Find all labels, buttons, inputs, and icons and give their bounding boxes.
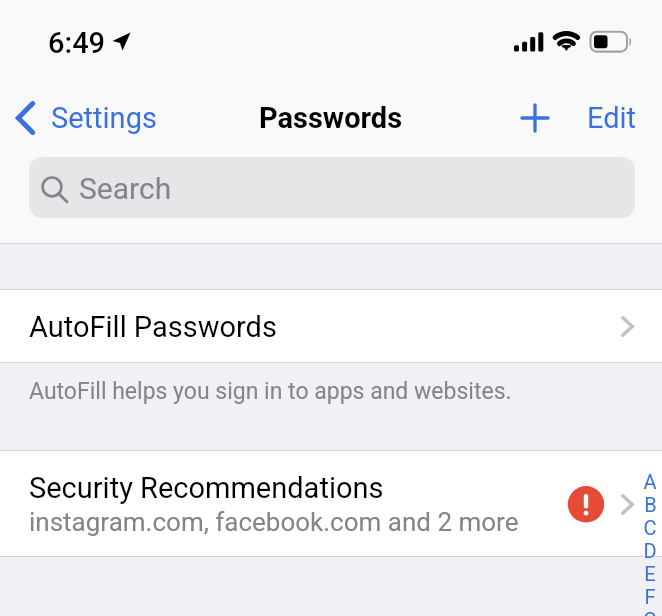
staticText: A <box>643 470 657 493</box>
button[interactable]: A <box>637 470 662 493</box>
button[interactable]: Add password <box>514 97 556 139</box>
staticText: E <box>644 562 656 585</box>
button[interactable]: D <box>637 539 662 562</box>
button[interactable]: E <box>637 562 662 585</box>
button[interactable]: Search <box>29 157 635 218</box>
button[interactable]: G <box>637 608 662 616</box>
button[interactable]: F <box>637 585 662 608</box>
staticText: G <box>643 608 657 616</box>
staticText: Edit <box>587 101 637 135</box>
staticText: Search <box>79 171 172 206</box>
staticText: AutoFill Passwords <box>29 310 277 344</box>
staticText: Passwords <box>259 101 403 135</box>
button[interactable]: Security Recommendations <box>0 451 662 557</box>
staticText: C <box>643 516 657 539</box>
staticText: 6:49 <box>48 26 106 60</box>
staticText: F <box>644 585 656 608</box>
button[interactable]: Edit <box>582 92 642 144</box>
button[interactable]: AutoFill Passwords <box>0 290 662 363</box>
staticText: D <box>643 539 657 562</box>
staticText: B <box>644 493 657 516</box>
button[interactable]: C <box>637 516 662 539</box>
button[interactable]: B <box>637 493 662 516</box>
staticText: Settings <box>51 101 157 135</box>
button[interactable]: Settings <box>0 101 157 135</box>
staticText: Security Recommendations <box>29 471 384 505</box>
staticText: AutoFill helps you sign in to apps and w… <box>29 378 512 405</box>
staticText: instagram.com, facebook.com and 2 more <box>29 507 519 537</box>
